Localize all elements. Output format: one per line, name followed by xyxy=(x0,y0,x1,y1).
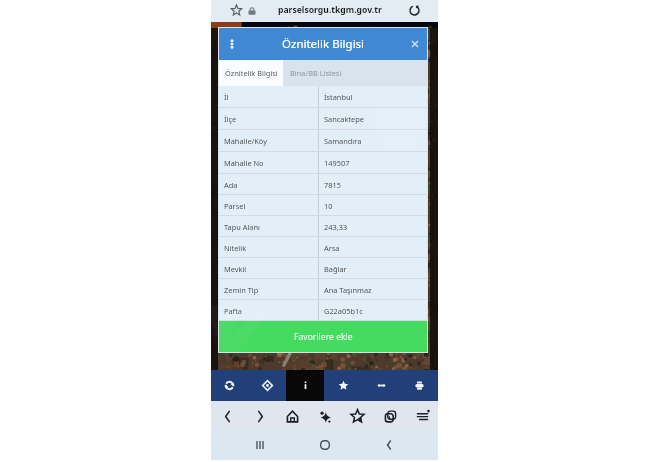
button[interactable]: Favourites xyxy=(324,370,362,401)
staticText: 149507 xyxy=(324,158,350,168)
staticText: Öznitelik Bilgisi xyxy=(282,36,365,52)
button[interactable]: Back xyxy=(377,433,401,457)
staticText: Parsel xyxy=(224,201,246,211)
staticText: 10 xyxy=(324,201,333,211)
button[interactable]: Öznitelik Bilgisi xyxy=(219,60,283,86)
button[interactable]: Back xyxy=(215,404,239,428)
button[interactable]: Print xyxy=(400,370,438,401)
staticText: Bina/BB Listesi xyxy=(290,68,342,78)
button[interactable]: Home xyxy=(313,433,337,457)
button[interactable]: İl xyxy=(219,86,427,108)
staticText: İlçe xyxy=(224,114,237,124)
staticText: Tapu Alanı xyxy=(224,222,260,232)
button[interactable]: Measure xyxy=(362,370,400,401)
button[interactable]: Bookmark xyxy=(230,4,243,17)
button[interactable]: Forward xyxy=(248,404,272,428)
button[interactable]: Tabs xyxy=(378,404,402,428)
staticText: Öznitelik Bilgisi xyxy=(225,68,278,78)
button[interactable]: Parsel xyxy=(219,195,427,216)
button[interactable]: İlçe xyxy=(219,108,427,130)
staticText: Pafta xyxy=(224,306,242,316)
staticText: Nitelik xyxy=(224,243,247,253)
button[interactable]: Tapu Alanı xyxy=(219,216,427,237)
staticText: parselsorgu.tkgm.gov.tr xyxy=(278,4,382,16)
staticText: Bağlar xyxy=(324,264,347,274)
button[interactable]: Parcel info xyxy=(286,370,324,401)
button[interactable]: Recent apps xyxy=(248,433,272,457)
staticText: 243,33 xyxy=(324,222,348,232)
staticText: Sancaktepe xyxy=(324,114,364,124)
staticText: 7815 xyxy=(324,180,341,190)
staticText: Arsa xyxy=(324,243,340,253)
button[interactable]: Zemin Tip xyxy=(219,279,427,300)
staticText: Mahalle/Köy xyxy=(224,136,267,146)
staticText: İstanbul xyxy=(324,92,353,102)
button[interactable]: Mahalle/Köy xyxy=(219,130,427,152)
button[interactable]: Bookmarks xyxy=(345,404,369,428)
button[interactable]: Ada xyxy=(219,174,427,195)
button[interactable]: Mahalle No xyxy=(219,152,427,174)
staticText: Zemin Tip xyxy=(224,285,259,295)
staticText: G22a05b1c xyxy=(324,306,363,316)
button[interactable]: Pafta xyxy=(219,300,427,321)
staticText: Mevkii xyxy=(224,264,247,274)
button[interactable]: Reload xyxy=(408,4,421,17)
button[interactable]: More options xyxy=(223,28,241,60)
staticText: Samandıra xyxy=(324,136,362,146)
staticText: Mahalle No xyxy=(224,158,264,168)
button[interactable]: Site information xyxy=(247,6,257,16)
staticText: Ana Taşınmaz xyxy=(324,285,372,295)
button[interactable]: Mevkii xyxy=(219,258,427,279)
staticText: Ada xyxy=(224,180,238,190)
button[interactable]: Bina/BB Listesi xyxy=(283,60,427,86)
button[interactable]: Refresh xyxy=(211,370,248,401)
staticText: Favorilere ekle xyxy=(294,331,353,343)
button[interactable]: My location xyxy=(248,370,286,401)
button[interactable]: Assistant xyxy=(313,404,337,428)
button[interactable]: Close xyxy=(408,37,422,51)
button[interactable]: Menu xyxy=(410,404,434,428)
button[interactable]: Home xyxy=(280,404,304,428)
staticText: İl xyxy=(224,92,229,102)
button[interactable]: Nitelik xyxy=(219,237,427,258)
button[interactable]: Favorilere ekle xyxy=(219,321,427,352)
